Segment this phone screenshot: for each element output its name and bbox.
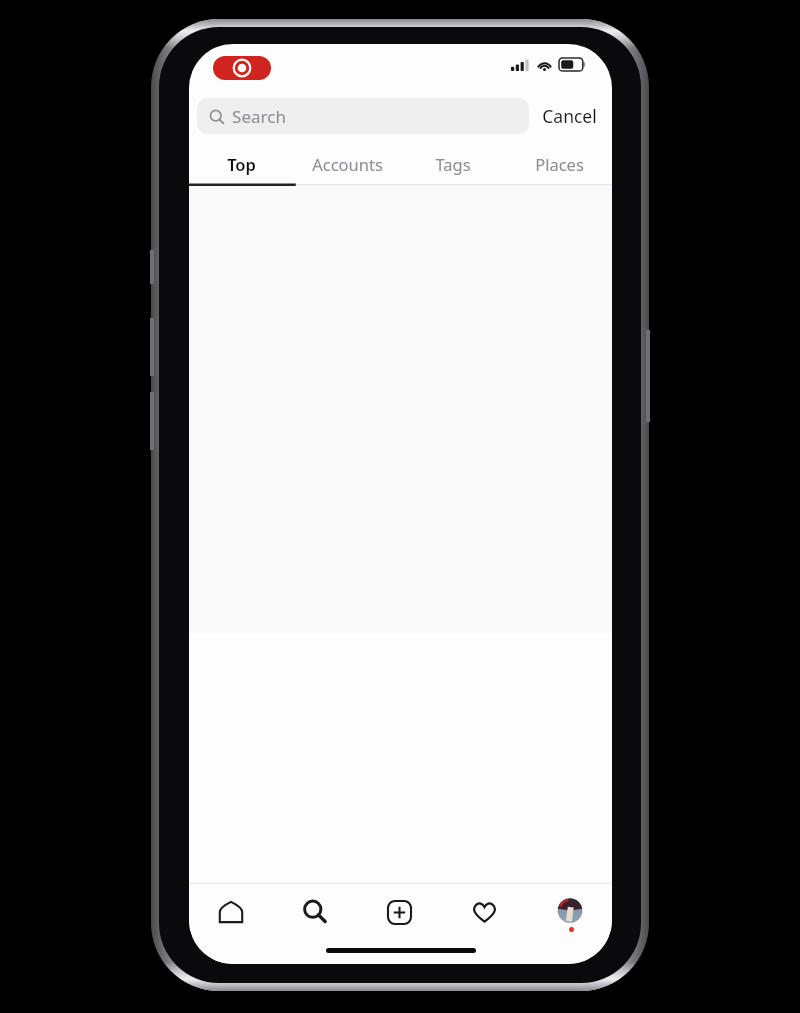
button[interactable]: Screen recording active: [213, 56, 271, 80]
button[interactable]: Create new post: [357, 884, 442, 940]
button[interactable]: Cancel: [540, 98, 599, 134]
button[interactable]: Search: [273, 884, 357, 940]
button[interactable]: Home: [189, 884, 273, 940]
staticText: Tags: [435, 153, 471, 175]
button[interactable]: Search: [197, 98, 529, 134]
button[interactable]: Top: [189, 141, 294, 186]
button[interactable]: Profile: [527, 884, 612, 940]
button[interactable]: Activity: [442, 884, 527, 940]
button[interactable]: Places: [506, 141, 612, 186]
staticText: Accounts: [312, 153, 383, 175]
button[interactable]: Accounts: [294, 141, 400, 186]
staticText: Top: [227, 153, 256, 175]
staticText: Places: [535, 153, 584, 175]
staticText: Search: [232, 105, 286, 128]
staticText: Cancel: [542, 104, 597, 128]
button[interactable]: Tags: [400, 141, 506, 186]
